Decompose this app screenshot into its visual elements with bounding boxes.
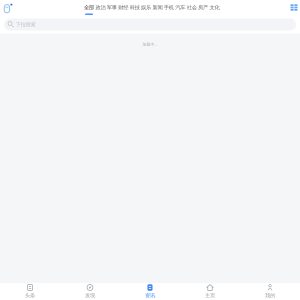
button[interactable]: 娱乐	[141, 0, 151, 15]
button[interactable]: 我的	[240, 283, 300, 300]
button[interactable]: 文化	[209, 0, 219, 15]
staticText: 财经	[118, 4, 128, 11]
staticText: 娱乐	[141, 4, 151, 11]
button[interactable]: 财经	[118, 0, 128, 15]
button[interactable]: 汽车	[175, 0, 185, 15]
staticText: 资讯	[145, 292, 155, 299]
button[interactable]: Menu	[290, 4, 300, 11]
button[interactable]: 新闻	[152, 0, 162, 15]
button[interactable]: 手机	[164, 0, 174, 15]
staticText: 发现	[85, 292, 95, 299]
staticText: 下拉搜索	[15, 21, 35, 28]
staticText: 主页	[205, 292, 215, 299]
staticText: 政治	[95, 4, 105, 11]
staticText: 房产	[198, 4, 208, 11]
staticText: 科技	[130, 4, 140, 11]
staticText: 军事	[107, 4, 117, 11]
button[interactable]: 主页	[180, 283, 240, 300]
button[interactable]: 全部	[84, 0, 94, 15]
button[interactable]: 资讯	[120, 283, 180, 300]
button[interactable]: 政治	[95, 0, 105, 15]
staticText: 全部	[84, 4, 94, 11]
staticText: 文化	[209, 4, 219, 11]
staticText: 新闻	[152, 4, 162, 11]
staticText: 加载中...	[142, 41, 157, 47]
staticText: 我的	[265, 292, 275, 299]
staticText: 社会	[187, 4, 197, 11]
button[interactable]: 社会	[187, 0, 197, 15]
button[interactable]: 发现	[60, 283, 120, 300]
staticText: 头条	[25, 292, 35, 299]
button[interactable]: 房产	[198, 0, 208, 15]
button[interactable]: 头条	[0, 283, 60, 300]
staticText: 手机	[164, 4, 174, 11]
button[interactable]: 科技	[130, 0, 140, 15]
button[interactable]: 军事	[107, 0, 117, 15]
staticText: 汽车	[175, 4, 185, 11]
button[interactable]: Logo	[0, 0, 13, 15]
